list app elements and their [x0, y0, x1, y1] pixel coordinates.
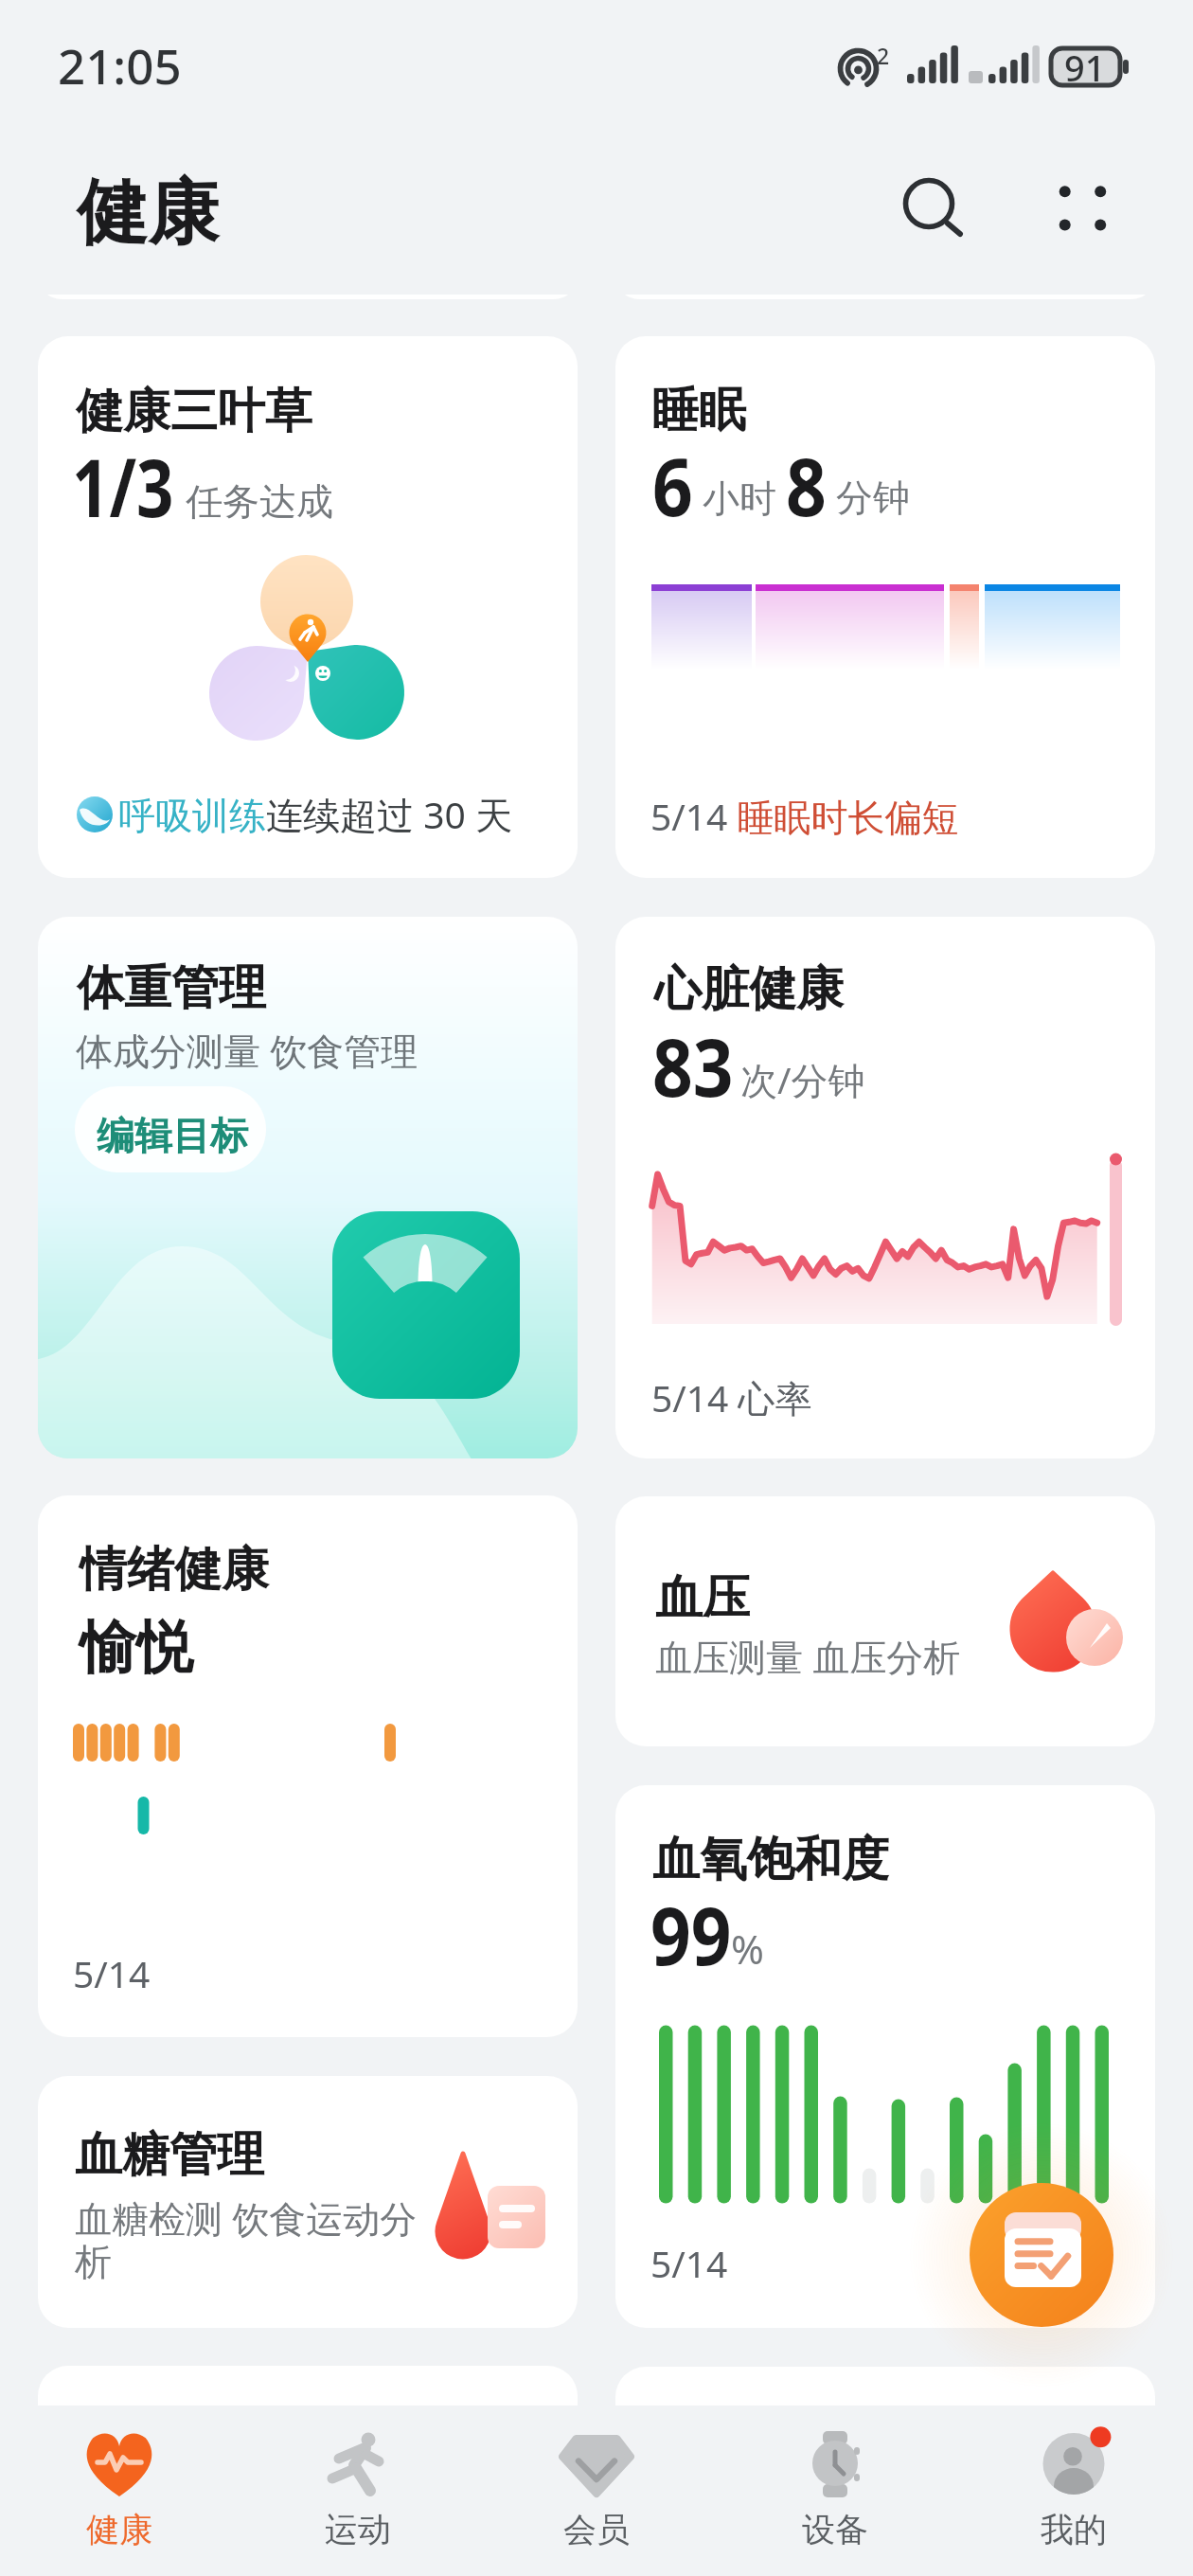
- staticText: 体重管理: [77, 958, 266, 1018]
- staticText: 5/14 睡眠时长偏短: [650, 791, 959, 841]
- staticText: 1/3: [72, 432, 174, 540]
- staticText: 设备: [802, 2509, 868, 2550]
- staticText: 8: [786, 431, 827, 539]
- staticText: 5/14: [73, 1948, 151, 1998]
- button[interactable]: 我的: [954, 2406, 1193, 2576]
- staticText: 血氧饱和度: [652, 1830, 889, 1889]
- staticText: 任务达成: [186, 478, 333, 525]
- button[interactable]: 情绪健康: [38, 1495, 578, 2037]
- button[interactable]: 运动: [239, 2406, 477, 2576]
- button[interactable]: 会员: [477, 2406, 716, 2576]
- staticText: 分钟: [836, 474, 910, 521]
- staticText: 2: [877, 41, 890, 70]
- button[interactable]: 健康三叶草: [38, 336, 578, 878]
- button[interactable]: 睡眠: [615, 336, 1155, 878]
- staticText: 睡眠: [651, 381, 746, 440]
- staticText: 健康: [86, 2509, 152, 2550]
- staticText: 我的: [1041, 2509, 1107, 2550]
- staticText: 21:05: [58, 32, 182, 98]
- button[interactable]: 设备: [716, 2406, 954, 2576]
- staticText: 99: [650, 1880, 732, 1988]
- staticText: 5/14: [650, 2238, 728, 2288]
- staticText: 愉悦: [80, 1612, 193, 1684]
- staticText: 次/分钟: [740, 1054, 865, 1104]
- staticText: 小时: [703, 475, 776, 522]
- staticText: 体成分测量 饮食管理: [76, 1025, 418, 1075]
- button[interactable]: 血氧饱和度: [615, 1785, 1155, 2328]
- button[interactable]: 心脏健康: [615, 917, 1155, 1458]
- button[interactable]: More options: [1042, 168, 1125, 251]
- button[interactable]: Search: [890, 163, 970, 243]
- button[interactable]: Add health record: [970, 2183, 1113, 2327]
- staticText: 6: [652, 431, 694, 539]
- button[interactable]: 血压: [615, 1496, 1155, 1746]
- staticText: 呼吸训练连续超过 30 天: [118, 789, 512, 839]
- staticText: 91: [1064, 43, 1106, 92]
- button[interactable]: 体重管理: [38, 917, 578, 1458]
- staticText: 血糖检测 饮食运动分析: [75, 2192, 427, 2286]
- staticText: 会员: [563, 2509, 630, 2550]
- staticText: 83: [652, 1011, 734, 1119]
- staticText: 心脏健康: [654, 959, 844, 1019]
- staticText: 健康: [77, 169, 219, 258]
- staticText: 血糖管理: [75, 2125, 264, 2185]
- staticText: 编辑目标: [97, 1112, 248, 1159]
- button[interactable]: 血糖管理: [38, 2076, 578, 2328]
- button[interactable]: 编辑目标: [75, 1086, 266, 1172]
- staticText: 运动: [325, 2509, 391, 2550]
- button[interactable]: 健康: [0, 2406, 239, 2576]
- staticText: 血压测量 血压分析: [655, 1631, 961, 1681]
- staticText: 情绪健康: [80, 1540, 269, 1600]
- staticText: 5/14 心率: [651, 1372, 812, 1422]
- staticText: 健康三叶草: [76, 382, 312, 441]
- staticText: 血压: [655, 1568, 750, 1628]
- staticText: %: [731, 1922, 764, 1976]
